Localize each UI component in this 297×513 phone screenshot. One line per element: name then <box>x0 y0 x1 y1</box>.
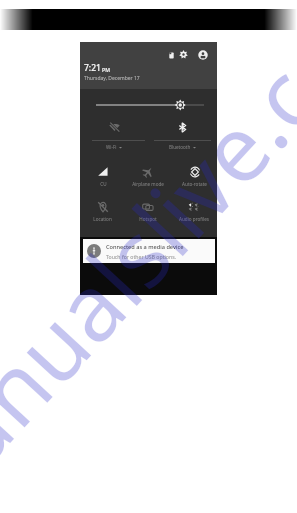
staticText: manualslive.com <box>0 0 297 513</box>
staticText: PM <box>102 66 110 73</box>
staticText: Location <box>93 216 112 222</box>
staticText: Thursday, December 17 <box>84 75 140 82</box>
staticText: Connected as a media device <box>106 243 184 251</box>
button[interactable]: Hotspot <box>125 201 171 225</box>
button[interactable]: Location <box>80 201 125 225</box>
button[interactable]: Settings <box>179 50 188 59</box>
staticText: Hotspot <box>139 216 157 222</box>
button[interactable]: Auto-rotate <box>171 166 217 190</box>
staticText: Bluetooth <box>169 144 191 150</box>
button[interactable]: CU <box>80 166 125 190</box>
staticText: Audio profiles <box>179 216 209 222</box>
button[interactable]: Airplane mode <box>125 166 171 190</box>
button[interactable]: User profile <box>198 50 208 60</box>
button[interactable]: Battery <box>166 50 177 61</box>
staticText: CU <box>100 181 107 187</box>
button[interactable]: Wi-Fi <box>80 121 148 153</box>
button[interactable]: Audio profiles <box>171 201 217 225</box>
button[interactable]: Connected as a media device <box>83 239 215 263</box>
staticText: Touch for other USB options. <box>106 253 177 260</box>
button[interactable]: Bluetooth <box>148 121 217 153</box>
staticText: Auto-rotate <box>182 181 207 187</box>
staticText: 7:21 <box>84 62 101 74</box>
staticText: Wi-Fi <box>106 144 117 150</box>
staticText: Airplane mode <box>132 181 164 187</box>
